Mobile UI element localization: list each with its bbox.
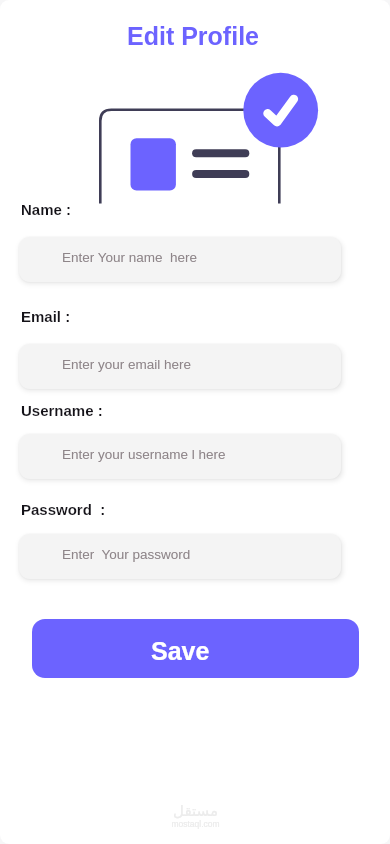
staticText: Save bbox=[151, 637, 210, 665]
staticText: Username : bbox=[21, 402, 103, 419]
staticText: mostaql.com bbox=[171, 819, 220, 828]
staticText: Enter your username l here bbox=[62, 447, 226, 462]
button[interactable]: Enter Your password bbox=[19, 534, 341, 579]
staticText: Enter Your password bbox=[62, 547, 191, 562]
staticText: Name : bbox=[21, 201, 72, 218]
button[interactable]: Enter Your name here bbox=[19, 237, 341, 282]
staticText: مستقل bbox=[173, 802, 218, 819]
staticText: Password : bbox=[21, 501, 106, 518]
staticText: Email : bbox=[21, 308, 71, 325]
staticText: Enter your email here bbox=[62, 357, 192, 372]
button[interactable]: Enter your username l here bbox=[19, 434, 341, 479]
button[interactable]: Save bbox=[32, 619, 359, 678]
staticText: Edit Profile bbox=[0, 22, 388, 50]
staticText: Enter Your name here bbox=[62, 250, 198, 265]
button[interactable]: Enter your email here bbox=[19, 344, 341, 389]
